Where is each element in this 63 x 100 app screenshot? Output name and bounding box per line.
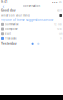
button[interactable]: Try one of these suggestions below [1,18,53,22]
button[interactable]: Summarise [0,22,63,27]
staticText: 128 [57,27,62,31]
staticText: Compose [5,27,18,31]
button[interactable]: Edit [0,31,63,36]
staticText: Summarise [5,23,19,26]
staticText: Good day [1,9,16,12]
staticText: 9:41 [1,0,7,4]
staticText: Try one of these suggestions below [1,18,53,22]
staticText: edit [57,9,62,12]
button[interactable]: Translate [0,36,63,41]
staticText: 12 GB [54,23,62,26]
staticText: ▪▪▪ ▭ [52,0,62,4]
staticText: On [59,32,62,35]
staticText: What's on your mind [1,14,30,17]
staticText: Translate [5,37,17,40]
button[interactable]: Profile [59,14,62,17]
button[interactable]: Compose [0,27,63,31]
staticText: Conversation [22,4,40,8]
staticText: 3 [60,37,62,40]
staticText: ‹ [2,3,4,9]
staticText: Yesterday [1,42,17,45]
button[interactable]: Back [1,4,6,8]
staticText: Edit [5,32,11,35]
